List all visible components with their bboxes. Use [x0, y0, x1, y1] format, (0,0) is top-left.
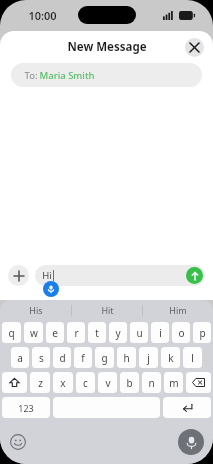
staticText: n	[148, 376, 155, 390]
button[interactable]: Backspace	[186, 372, 211, 393]
staticText: m	[169, 376, 179, 390]
staticText: j	[147, 351, 150, 365]
button[interactable]: j	[139, 347, 158, 368]
staticText: q	[8, 326, 15, 340]
button[interactable]: r	[67, 322, 85, 343]
button[interactable]: p	[193, 322, 211, 343]
staticText: w	[30, 326, 38, 340]
staticText: r	[74, 326, 79, 340]
staticText: Hi	[42, 269, 52, 282]
button[interactable]: c	[76, 372, 95, 393]
button[interactable]: return	[163, 397, 211, 418]
button[interactable]: m	[164, 372, 183, 393]
staticText: 10:00	[28, 8, 57, 23]
button[interactable]: Emoji	[10, 434, 26, 450]
button[interactable]: v	[98, 372, 117, 393]
staticText: a	[17, 351, 23, 365]
button[interactable]: 123	[2, 397, 50, 418]
button[interactable]: g	[95, 347, 114, 368]
button[interactable]: To:	[11, 63, 202, 87]
button[interactable]: Add attachment	[8, 265, 29, 286]
staticText: y	[115, 326, 121, 340]
button[interactable]: Him	[143, 300, 213, 320]
button[interactable]: a	[11, 347, 29, 368]
staticText: New Message	[67, 39, 147, 55]
staticText: h	[123, 351, 130, 365]
staticText: His	[29, 304, 43, 316]
button[interactable]: Hit	[72, 300, 142, 320]
staticText: e	[52, 326, 58, 340]
staticText: p	[199, 326, 206, 340]
staticText: To:	[23, 69, 39, 82]
staticText: x	[60, 376, 66, 390]
button[interactable]: u	[130, 322, 148, 343]
button[interactable]: z	[30, 372, 50, 393]
button[interactable]: e	[46, 322, 64, 343]
staticText: 123	[18, 402, 34, 414]
staticText: Maria Smith	[39, 69, 95, 82]
button[interactable]: n	[142, 372, 161, 393]
button[interactable]: Send	[186, 267, 203, 284]
staticText: v	[105, 376, 111, 390]
staticText: o	[178, 326, 185, 340]
button[interactable]: k	[161, 347, 180, 368]
staticText: z	[38, 376, 43, 390]
button[interactable]: Dictation	[43, 281, 59, 297]
button[interactable]: Close	[185, 38, 204, 57]
staticText: g	[101, 351, 108, 365]
staticText: f	[81, 351, 85, 365]
button[interactable]: i	[151, 322, 169, 343]
staticText: u	[136, 326, 143, 340]
button[interactable]: x	[53, 372, 73, 393]
staticText: s	[39, 351, 44, 365]
staticText: i	[159, 326, 162, 340]
staticText: t	[95, 326, 99, 340]
button[interactable]: His	[0, 300, 71, 320]
staticText: b	[126, 376, 133, 390]
staticText: d	[59, 351, 66, 365]
button[interactable]: w	[24, 322, 43, 343]
staticText: Him	[169, 304, 187, 316]
button[interactable]: Hi	[35, 265, 205, 286]
button[interactable]: y	[109, 322, 127, 343]
button[interactable]: b	[120, 372, 139, 393]
button[interactable]: d	[53, 347, 71, 368]
button[interactable]: o	[172, 322, 190, 343]
button[interactable]: Voice input	[178, 429, 204, 455]
button[interactable]: t	[88, 322, 106, 343]
button[interactable]: l	[183, 347, 202, 368]
staticText: l	[191, 351, 194, 365]
button[interactable]: s	[32, 347, 50, 368]
button[interactable]: h	[117, 347, 136, 368]
button[interactable]: q	[2, 322, 21, 343]
staticText: c	[83, 376, 88, 390]
staticText: k	[168, 351, 174, 365]
staticText: Hit	[101, 304, 114, 316]
button[interactable]: Shift	[2, 372, 27, 393]
button[interactable]: f	[74, 347, 92, 368]
